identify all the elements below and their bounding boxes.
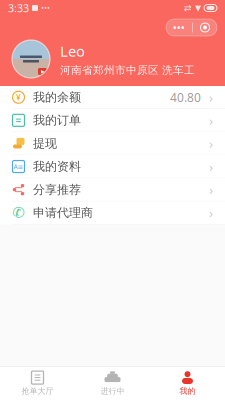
staticText: •••: [173, 21, 185, 34]
button[interactable]: ✆: [0, 201, 225, 224]
staticText: ›: [209, 88, 213, 106]
staticText: 我的余额: [33, 90, 81, 105]
staticText: •••: [41, 3, 50, 13]
staticText: ›: [209, 204, 213, 222]
staticText: ▼: [195, 3, 201, 13]
staticText: ✆: [12, 204, 24, 221]
staticText: 40.80: [170, 89, 201, 105]
staticText: Leo: [60, 41, 85, 61]
button[interactable]: More options: [166, 19, 217, 36]
staticText: A≡: [13, 162, 23, 171]
staticText: 我的: [179, 386, 195, 396]
staticText: 我的订单: [33, 113, 81, 128]
staticText: ›: [209, 158, 213, 175]
staticText: 进行中: [100, 386, 124, 396]
staticText: ▶: [40, 68, 44, 75]
staticText: 我的资料: [33, 159, 81, 174]
button[interactable]: 我的: [150, 367, 225, 400]
staticText: 分享推荐: [33, 182, 81, 197]
button[interactable]: 分享推荐: [0, 178, 225, 201]
staticText: 河南省郑州市中原区 洗车工: [60, 64, 195, 77]
staticText: 申请代理商: [33, 205, 93, 220]
staticText: ›: [209, 181, 213, 198]
button[interactable]: 我的订单: [0, 109, 225, 132]
button[interactable]: 提现: [0, 132, 225, 155]
button[interactable]: ¥: [0, 86, 225, 108]
staticText: 3:33: [8, 1, 29, 15]
button[interactable]: 抢单大厅: [0, 367, 75, 400]
button[interactable]: 进行中: [75, 367, 150, 400]
staticText: ⇄: [184, 3, 192, 13]
staticText: ›: [209, 135, 213, 152]
staticText: 抢单大厅: [21, 386, 53, 396]
staticText: ¥: [16, 92, 21, 102]
staticText: ›: [209, 111, 213, 129]
button[interactable]: A≡: [0, 155, 225, 178]
staticText: 提现: [33, 136, 57, 151]
